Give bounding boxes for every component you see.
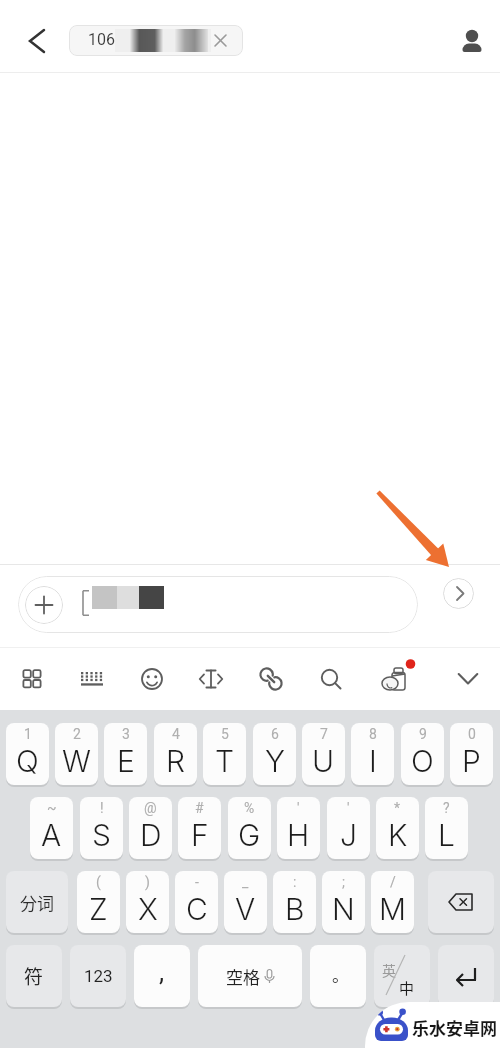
button[interactable]: ? (425, 797, 468, 859)
staticText: W (62, 743, 91, 779)
button[interactable]: 。 (310, 945, 366, 1007)
staticText: 0 (468, 726, 476, 742)
staticText: 3 (122, 726, 130, 742)
button[interactable] (130, 648, 174, 710)
button[interactable]: 英 (374, 945, 430, 1007)
button[interactable] (189, 648, 233, 710)
staticText: 空格 (226, 964, 260, 989)
staticText: S (92, 817, 111, 853)
button[interactable]: ) (126, 871, 169, 933)
button[interactable] (14, 19, 58, 63)
staticText: K (388, 817, 408, 853)
staticText: Y (265, 743, 285, 779)
button[interactable] (249, 648, 293, 710)
staticText: O (411, 743, 434, 779)
staticText: * (394, 800, 401, 816)
staticText: P (462, 743, 481, 779)
staticText: 123 (84, 966, 113, 986)
staticText: 乐水安卓网 (412, 1015, 497, 1040)
staticText: 8 (369, 726, 377, 742)
staticText: H (287, 817, 310, 853)
button[interactable]: 5 (203, 723, 246, 785)
button[interactable]: 8 (351, 723, 394, 785)
staticText: J (340, 817, 358, 853)
staticText: D (140, 817, 162, 853)
staticText: 6 (271, 726, 279, 742)
staticText: 9 (419, 726, 427, 742)
button[interactable]: , (134, 945, 190, 1007)
button[interactable]: / (371, 871, 414, 933)
staticText: ~ (47, 800, 57, 816)
staticText: # (195, 800, 204, 816)
button[interactable] (450, 20, 494, 64)
button[interactable]: 符 (6, 945, 62, 1007)
staticText: : (293, 874, 297, 890)
staticText: 分词 (20, 890, 54, 915)
staticText: 符 (24, 962, 44, 990)
button[interactable]: 4 (154, 723, 197, 785)
button[interactable] (309, 648, 353, 710)
button[interactable]: - (175, 871, 218, 933)
staticText: L (438, 817, 455, 853)
staticText: ? (443, 800, 450, 816)
button[interactable]: _ (224, 871, 267, 933)
button[interactable] (25, 586, 63, 624)
staticText: N (332, 891, 355, 927)
button[interactable]: ' (277, 797, 320, 859)
button[interactable]: 7 (302, 723, 345, 785)
button[interactable]: 106 (69, 25, 243, 56)
button[interactable] (443, 578, 474, 609)
button[interactable]: 0 (450, 723, 493, 785)
staticText: F (191, 817, 209, 853)
button[interactable]: 1 (6, 723, 49, 785)
staticText: 7 (320, 726, 328, 742)
staticText: ( (96, 874, 101, 890)
button[interactable]: * (376, 797, 419, 859)
button[interactable]: % (228, 797, 271, 859)
staticText: 中 (399, 977, 415, 999)
staticText: @ (144, 800, 157, 816)
staticText: I (369, 743, 377, 779)
staticText: 1 (24, 726, 32, 742)
staticText: Q (16, 743, 39, 779)
button[interactable]: ; (322, 871, 365, 933)
button[interactable]: ' (327, 797, 370, 859)
staticText: _ (242, 874, 249, 890)
staticText: 英 (382, 960, 396, 980)
button[interactable]: @ (129, 797, 172, 859)
button[interactable] (438, 945, 494, 1007)
staticText: 5 (221, 726, 229, 742)
button[interactable] (10, 648, 54, 710)
button[interactable]: # (178, 797, 221, 859)
button[interactable]: : (273, 871, 316, 933)
button[interactable] (70, 648, 114, 710)
staticText: 106 (88, 30, 115, 49)
button[interactable] (428, 871, 494, 933)
button[interactable]: ! (80, 797, 123, 859)
button[interactable]: ~ (30, 797, 73, 859)
staticText: ! (100, 800, 104, 816)
staticText: , (159, 957, 165, 987)
staticText: V (235, 891, 256, 927)
staticText: ' (347, 800, 350, 816)
button[interactable]: 123 (70, 945, 126, 1007)
staticText: A (41, 817, 62, 853)
button[interactable]: 6 (253, 723, 296, 785)
staticText: U (312, 743, 335, 779)
staticText: X (138, 891, 158, 927)
staticText: M (379, 891, 407, 927)
button[interactable]: 3 (104, 723, 147, 785)
staticText: R (166, 743, 186, 779)
staticText: E (117, 743, 135, 779)
staticText: T (215, 743, 235, 779)
button[interactable]: 分词 (6, 871, 68, 933)
button[interactable]: ( (77, 871, 120, 933)
staticText: % (244, 800, 255, 816)
button[interactable]: 空格 (198, 945, 302, 1007)
button[interactable] (369, 648, 413, 710)
staticText: - (195, 874, 199, 890)
button[interactable] (446, 648, 490, 710)
button[interactable]: 2 (55, 723, 98, 785)
button[interactable]: 9 (401, 723, 444, 785)
button[interactable] (18, 576, 418, 633)
